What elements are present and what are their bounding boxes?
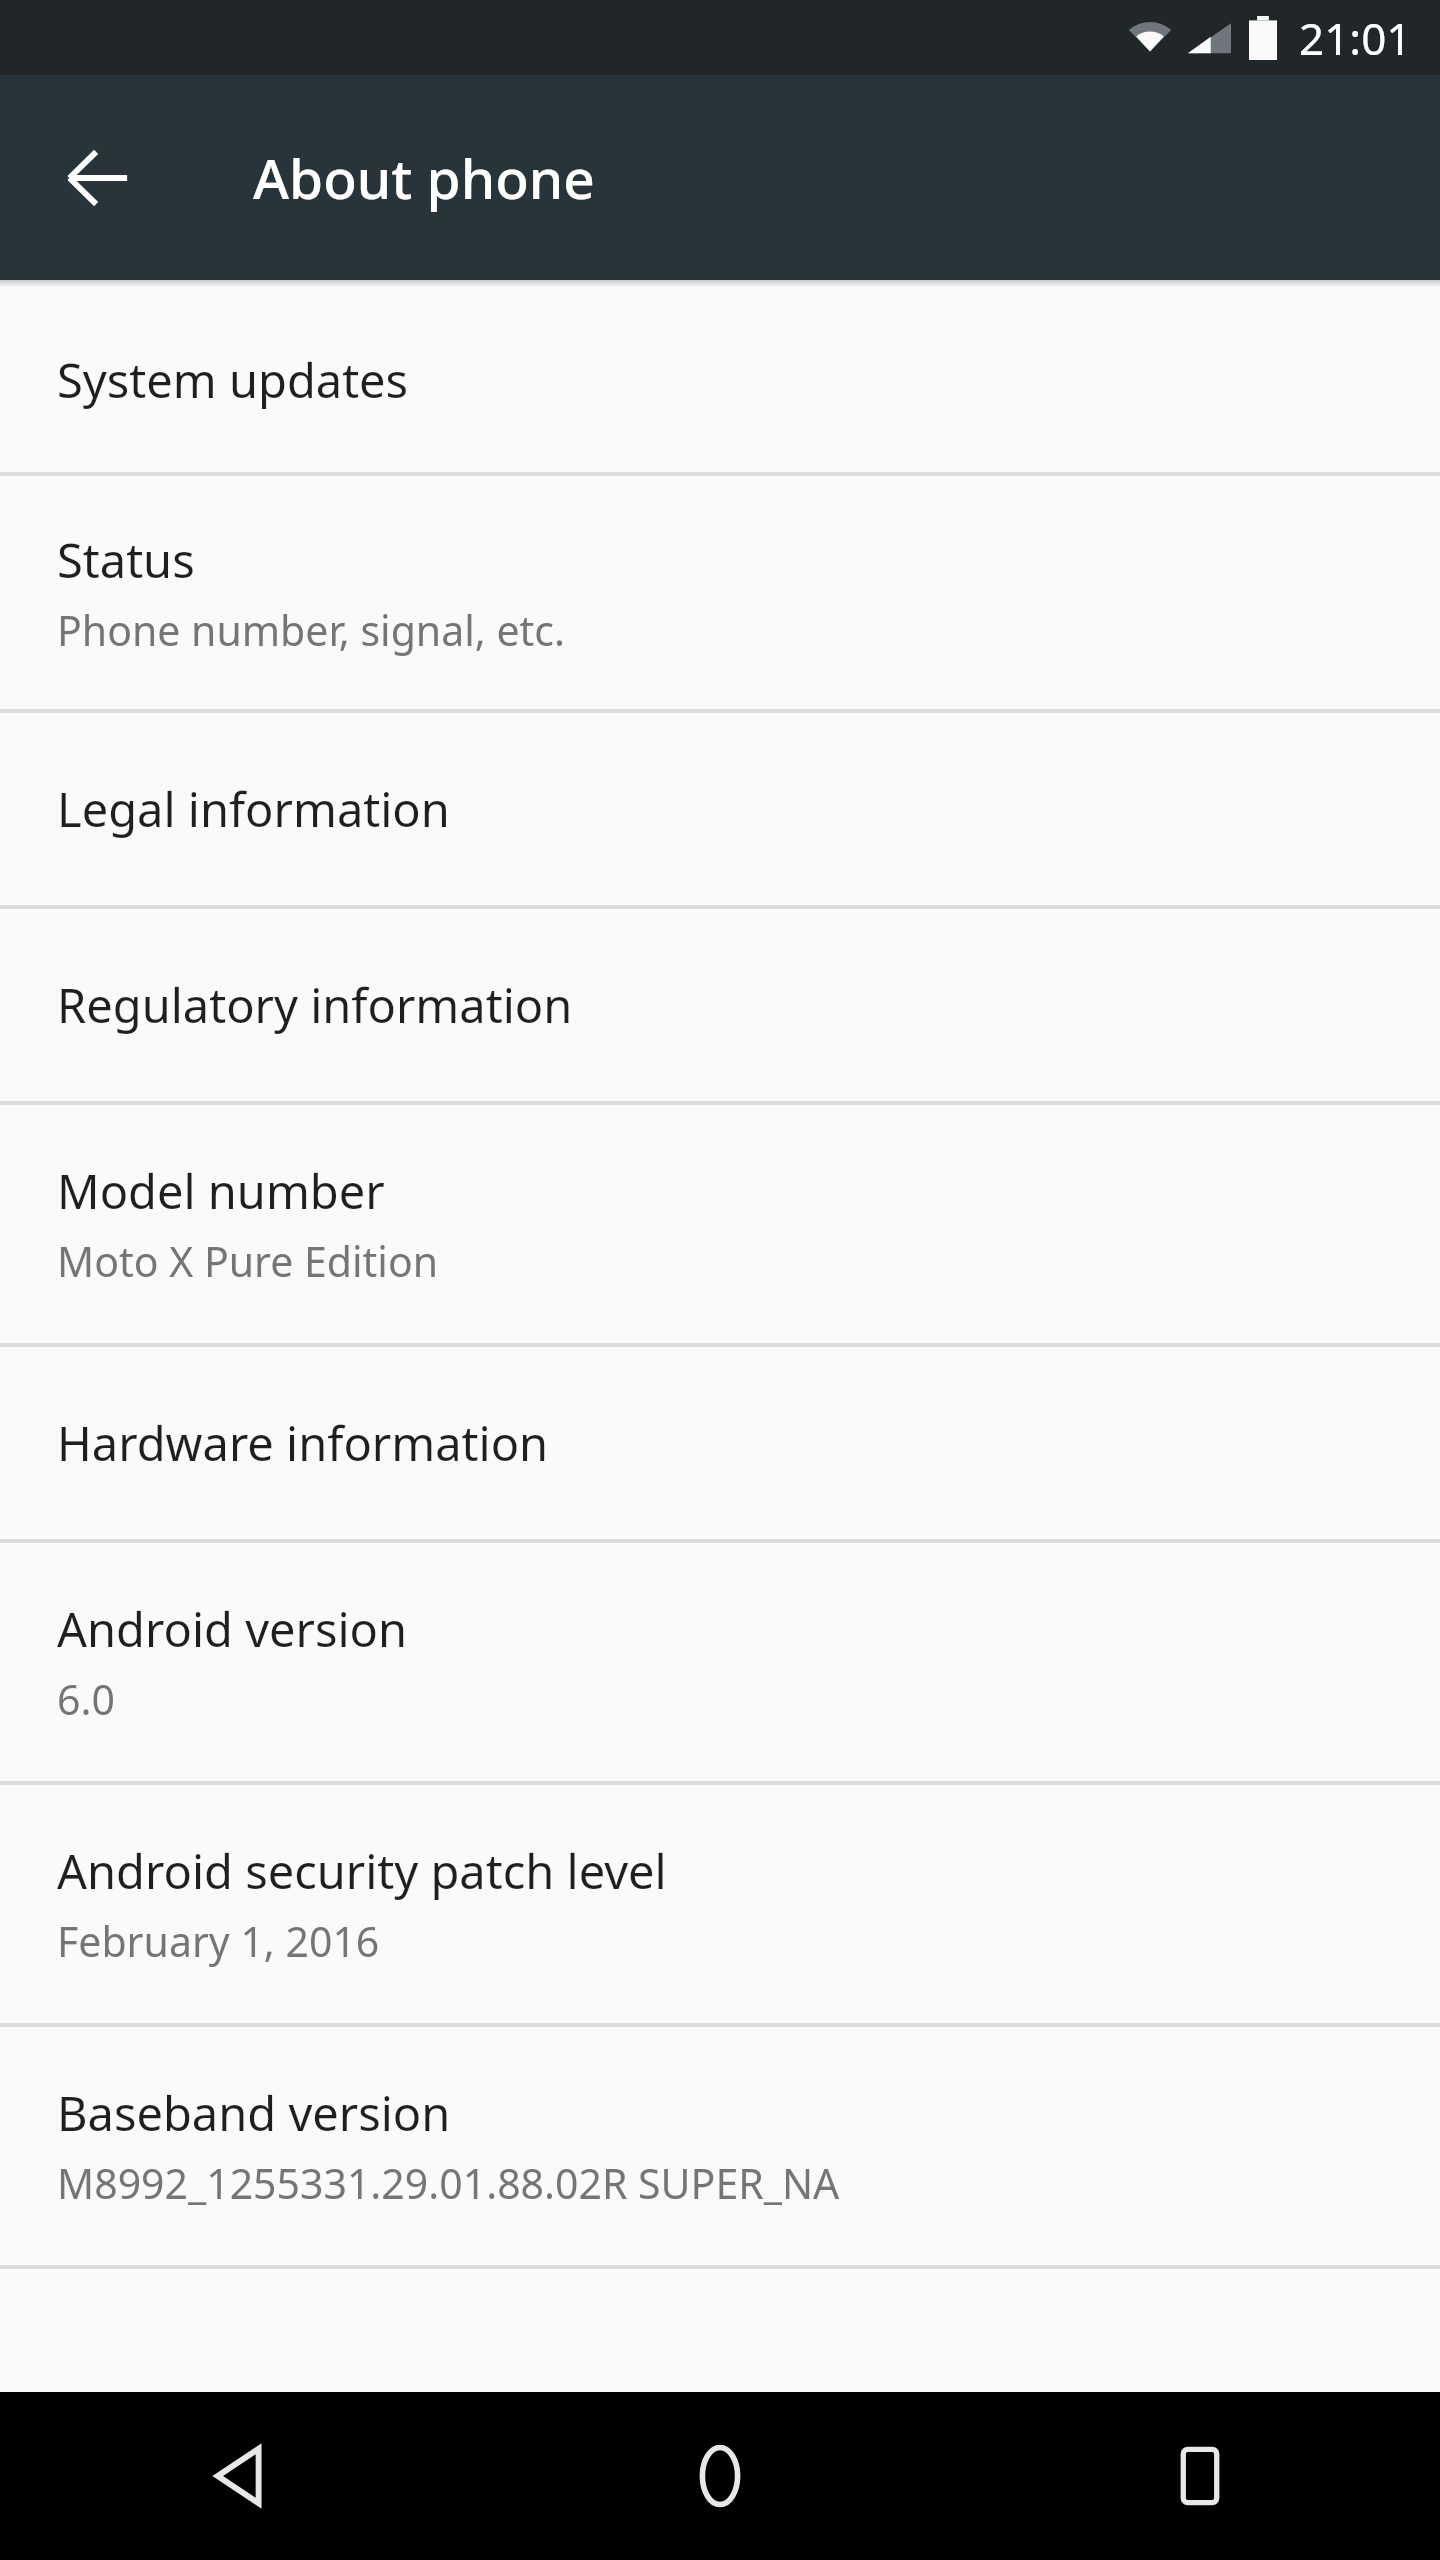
- staticText: Android version: [57, 1597, 408, 1661]
- staticText: Android security patch level: [57, 1839, 667, 1903]
- staticText: Regulatory information: [57, 973, 573, 1037]
- button[interactable]: Legal information: [0, 713, 1440, 905]
- button[interactable]: Recent apps: [960, 2392, 1440, 2560]
- staticText: System updates: [57, 348, 409, 412]
- staticText: Legal information: [57, 777, 450, 841]
- button[interactable]: System updates: [0, 287, 1440, 472]
- button[interactable]: Back: [30, 110, 166, 246]
- button[interactable]: Back: [0, 2392, 480, 2560]
- staticText: Hardware information: [57, 1411, 549, 1475]
- button[interactable]: Hardware information: [0, 1347, 1440, 1539]
- staticText: Status: [57, 528, 195, 592]
- staticText: Phone number, signal, etc.: [57, 602, 566, 658]
- button[interactable]: Regulatory information: [0, 909, 1440, 1101]
- staticText: 6.0: [57, 1671, 115, 1727]
- button[interactable]: Model number: [0, 1105, 1440, 1343]
- staticText: Model number: [57, 1159, 385, 1223]
- staticText: February 1, 2016: [57, 1913, 380, 1969]
- staticText: Moto X Pure Edition: [57, 1233, 439, 1289]
- button[interactable]: Baseband version: [0, 2027, 1440, 2265]
- staticText: M8992_1255331.29.01.88.02R SUPER_NA: [57, 2155, 840, 2211]
- button[interactable]: Android version: [0, 1543, 1440, 1781]
- button[interactable]: Status: [0, 476, 1440, 709]
- button[interactable]: Android security patch level: [0, 1785, 1440, 2023]
- staticText: Baseband version: [57, 2081, 451, 2145]
- button[interactable]: Home: [480, 2392, 960, 2560]
- staticText: 21:01: [1299, 8, 1412, 68]
- staticText: About phone: [253, 140, 595, 215]
